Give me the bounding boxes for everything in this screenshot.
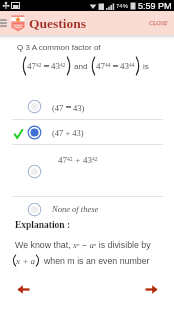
staticText: 4342: [51, 61, 66, 71]
staticText: None of these: [52, 204, 99, 213]
staticText: Explanation :: [15, 220, 71, 231]
staticText: 74%: [116, 3, 129, 10]
button[interactable]: CLOSE: [143, 15, 174, 32]
staticText: 4742: [58, 155, 73, 165]
staticText: 4744: [96, 61, 111, 71]
button[interactable]: (47 + 43): [0, 120, 174, 145]
staticText: +: [73, 155, 83, 165]
button[interactable]: (47: [0, 93, 174, 120]
staticText: 4344: [120, 61, 135, 71]
button[interactable]: Next question: [137, 275, 165, 303]
button[interactable]: None of these: [0, 196, 174, 222]
staticText: 4342: [83, 155, 98, 165]
button[interactable]: 4742: [0, 145, 174, 197]
button[interactable]: Menu: [0, 17, 10, 29]
staticText: (47 + 43): [52, 128, 84, 137]
staticText: We know that, xn − an is divisible by: [15, 240, 151, 250]
staticText: when m is an even number: [39, 256, 150, 266]
staticText: 4742: [27, 61, 42, 71]
staticText: and: [74, 62, 88, 71]
staticText: is: [143, 62, 149, 71]
staticText: 5:59 PM: [138, 1, 172, 11]
button[interactable]: Previous question: [9, 275, 37, 303]
staticText: Q 3 A common factor of: [17, 43, 101, 52]
staticText: (47: [52, 103, 64, 112]
staticText: x + a: [16, 256, 36, 266]
staticText: 43): [73, 103, 85, 112]
staticText: CLOSE: [149, 20, 168, 27]
staticText: Questions: [29, 16, 87, 31]
